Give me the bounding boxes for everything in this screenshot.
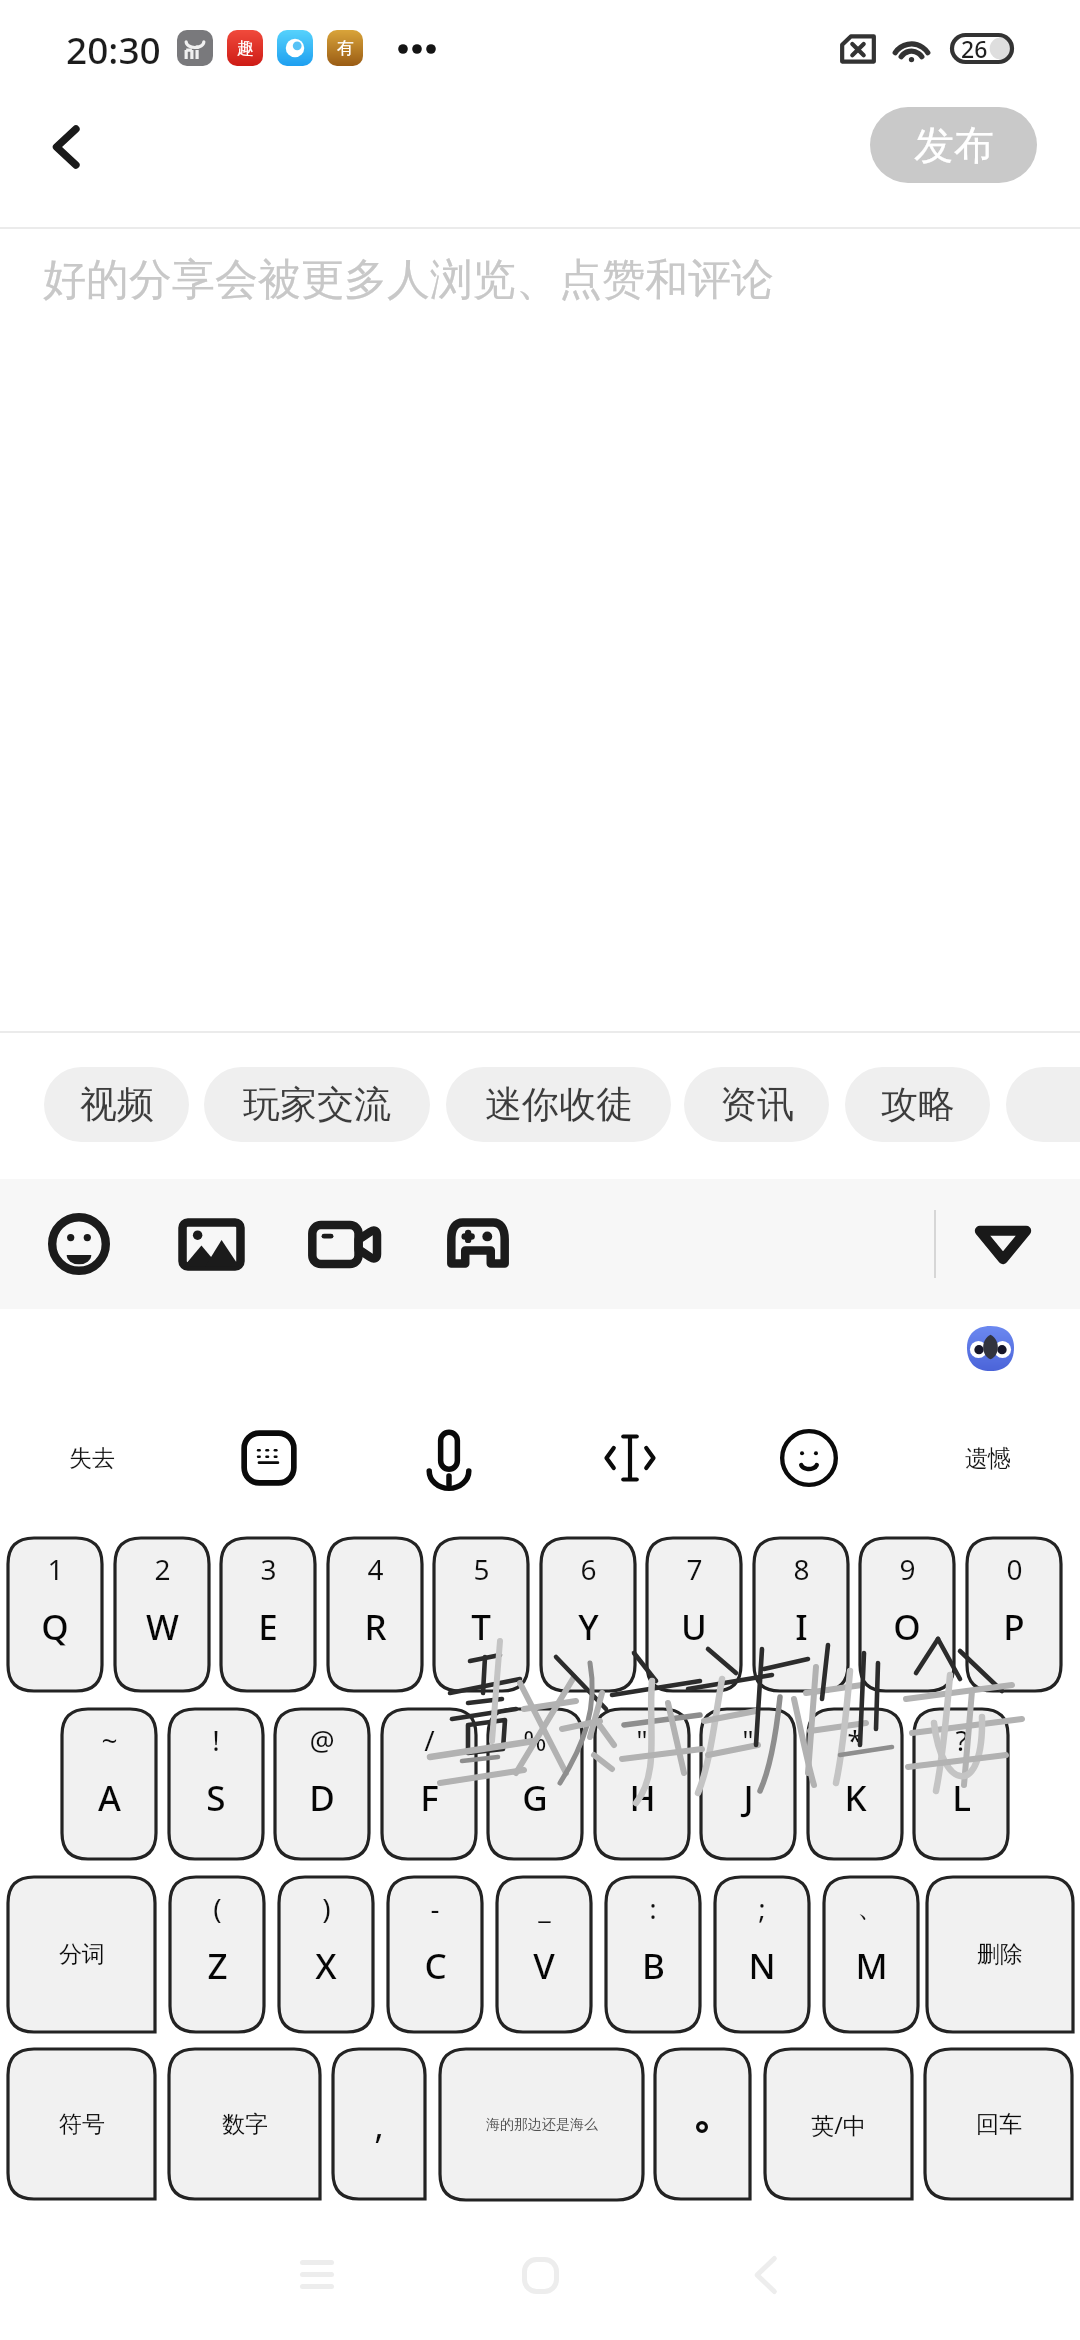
staticText: C: [424, 1942, 447, 1990]
staticText: 资讯: [720, 1081, 794, 1128]
button[interactable]: 3: [221, 1538, 315, 1691]
staticText: 0: [1006, 1550, 1023, 1588]
button[interactable]: 9: [860, 1538, 954, 1691]
staticText: 趣: [237, 38, 254, 59]
button[interactable]: 0: [967, 1538, 1061, 1691]
staticText: ~: [101, 1721, 118, 1759]
button[interactable]: 视频: [44, 1067, 189, 1142]
button[interactable]: Post text field: [0, 229, 1080, 1029]
button[interactable]: 攻略: [845, 1067, 990, 1142]
staticText: 5: [473, 1550, 490, 1588]
button[interactable]: 1: [8, 1538, 102, 1691]
staticText: 26: [961, 33, 988, 64]
button[interactable]: 4: [328, 1538, 422, 1691]
button[interactable]: ~: [62, 1709, 156, 1859]
staticText: 玩家交流: [243, 1081, 391, 1128]
button[interactable]: @: [275, 1709, 369, 1859]
button[interactable]: Back: [26, 107, 106, 187]
staticText: W: [146, 1603, 179, 1651]
staticText: J: [743, 1774, 754, 1822]
button[interactable]: 5: [434, 1538, 528, 1691]
staticText: 迷你收徒: [485, 1081, 633, 1128]
staticText: D: [309, 1774, 335, 1822]
button[interactable]: %: [488, 1709, 582, 1859]
button[interactable]: 7: [647, 1538, 741, 1691]
button[interactable]: 数字: [169, 2049, 320, 2199]
staticText: 好的分享会被更多人浏览、点赞和评论: [43, 253, 774, 307]
staticText: Q: [41, 1603, 69, 1651]
staticText: 遗憾: [965, 1444, 1011, 1473]
staticText: B: [642, 1942, 665, 1990]
button[interactable]: Video: [304, 1204, 384, 1284]
staticText: F: [420, 1774, 439, 1822]
staticText: 视频: [80, 1081, 154, 1128]
staticText: P: [1003, 1603, 1025, 1651]
button[interactable]: :: [606, 1877, 700, 2032]
staticText: _: [538, 1889, 551, 1927]
staticText: X: [315, 1942, 337, 1990]
staticText: N: [748, 1942, 776, 1990]
button[interactable]: 玩家交流: [204, 1067, 430, 1142]
button[interactable]: (: [170, 1877, 264, 2032]
button[interactable]: 英/中: [765, 2049, 912, 2199]
button[interactable]: Home: [500, 2235, 580, 2315]
button[interactable]: -: [388, 1877, 482, 2032]
button[interactable]: 2: [115, 1538, 209, 1691]
button[interactable]: 6: [541, 1538, 635, 1691]
staticText: ": [636, 1721, 648, 1759]
button[interactable]: Back: [725, 2235, 805, 2315]
button[interactable]: !: [169, 1709, 263, 1859]
button[interactable]: *: [808, 1709, 902, 1859]
staticText: V: [533, 1942, 555, 1990]
button[interactable]: [655, 2049, 750, 2199]
button[interactable]: Move cursor: [585, 1413, 675, 1503]
button[interactable]: 迷你收徒: [446, 1067, 671, 1142]
button[interactable]: ): [279, 1877, 373, 2032]
staticText: 攻略: [881, 1081, 955, 1128]
button[interactable]: 资讯: [684, 1067, 829, 1142]
button[interactable]: Image: [171, 1204, 251, 1284]
button[interactable]: ?: [914, 1709, 1008, 1859]
staticText: 20:30: [66, 24, 161, 74]
staticText: A: [98, 1774, 121, 1822]
staticText: L: [952, 1774, 971, 1822]
staticText: @: [309, 1721, 335, 1759]
staticText: 9: [899, 1550, 916, 1588]
button[interactable]: Keyboard: [224, 1413, 314, 1503]
button[interactable]: Emoticons: [764, 1413, 854, 1503]
button[interactable]: 发布: [870, 107, 1037, 183]
button[interactable]: 回车: [925, 2049, 1072, 2199]
staticText: ?: [955, 1721, 968, 1759]
staticText: E: [258, 1603, 278, 1651]
staticText: R: [364, 1603, 387, 1651]
button[interactable]: Game: [438, 1204, 518, 1284]
button[interactable]: ;: [715, 1877, 809, 2032]
button[interactable]: 删除: [927, 1877, 1073, 2032]
staticText: M: [855, 1942, 888, 1990]
button[interactable]: Collapse keyboard: [963, 1204, 1043, 1284]
button[interactable]: Recent apps: [277, 2235, 357, 2315]
staticText: 1: [47, 1550, 64, 1588]
button[interactable]: ,: [333, 2049, 425, 2199]
staticText: O: [893, 1603, 921, 1651]
button[interactable]: 符号: [8, 2049, 155, 2199]
button[interactable]: 8: [754, 1538, 848, 1691]
button[interactable]: ": [595, 1709, 689, 1859]
staticText: ;: [758, 1889, 766, 1927]
staticText: 6: [580, 1550, 597, 1588]
button[interactable]: ": [701, 1709, 795, 1859]
staticText: 数字: [222, 2110, 268, 2139]
button[interactable]: Voice input: [404, 1413, 494, 1503]
button[interactable]: _: [497, 1877, 591, 2032]
staticText: %: [523, 1721, 547, 1759]
button[interactable]: [1006, 1067, 1080, 1142]
staticText: S: [206, 1774, 226, 1822]
button[interactable]: 、: [824, 1877, 918, 2032]
staticText: ": [742, 1721, 754, 1759]
button[interactable]: /: [382, 1709, 476, 1859]
staticText: -: [430, 1889, 440, 1927]
button[interactable]: Emoji: [39, 1204, 119, 1284]
button[interactable]: 分词: [8, 1877, 155, 2032]
button[interactable]: 海的那边还是海么: [440, 2049, 643, 2200]
staticText: 、: [857, 1889, 885, 1924]
